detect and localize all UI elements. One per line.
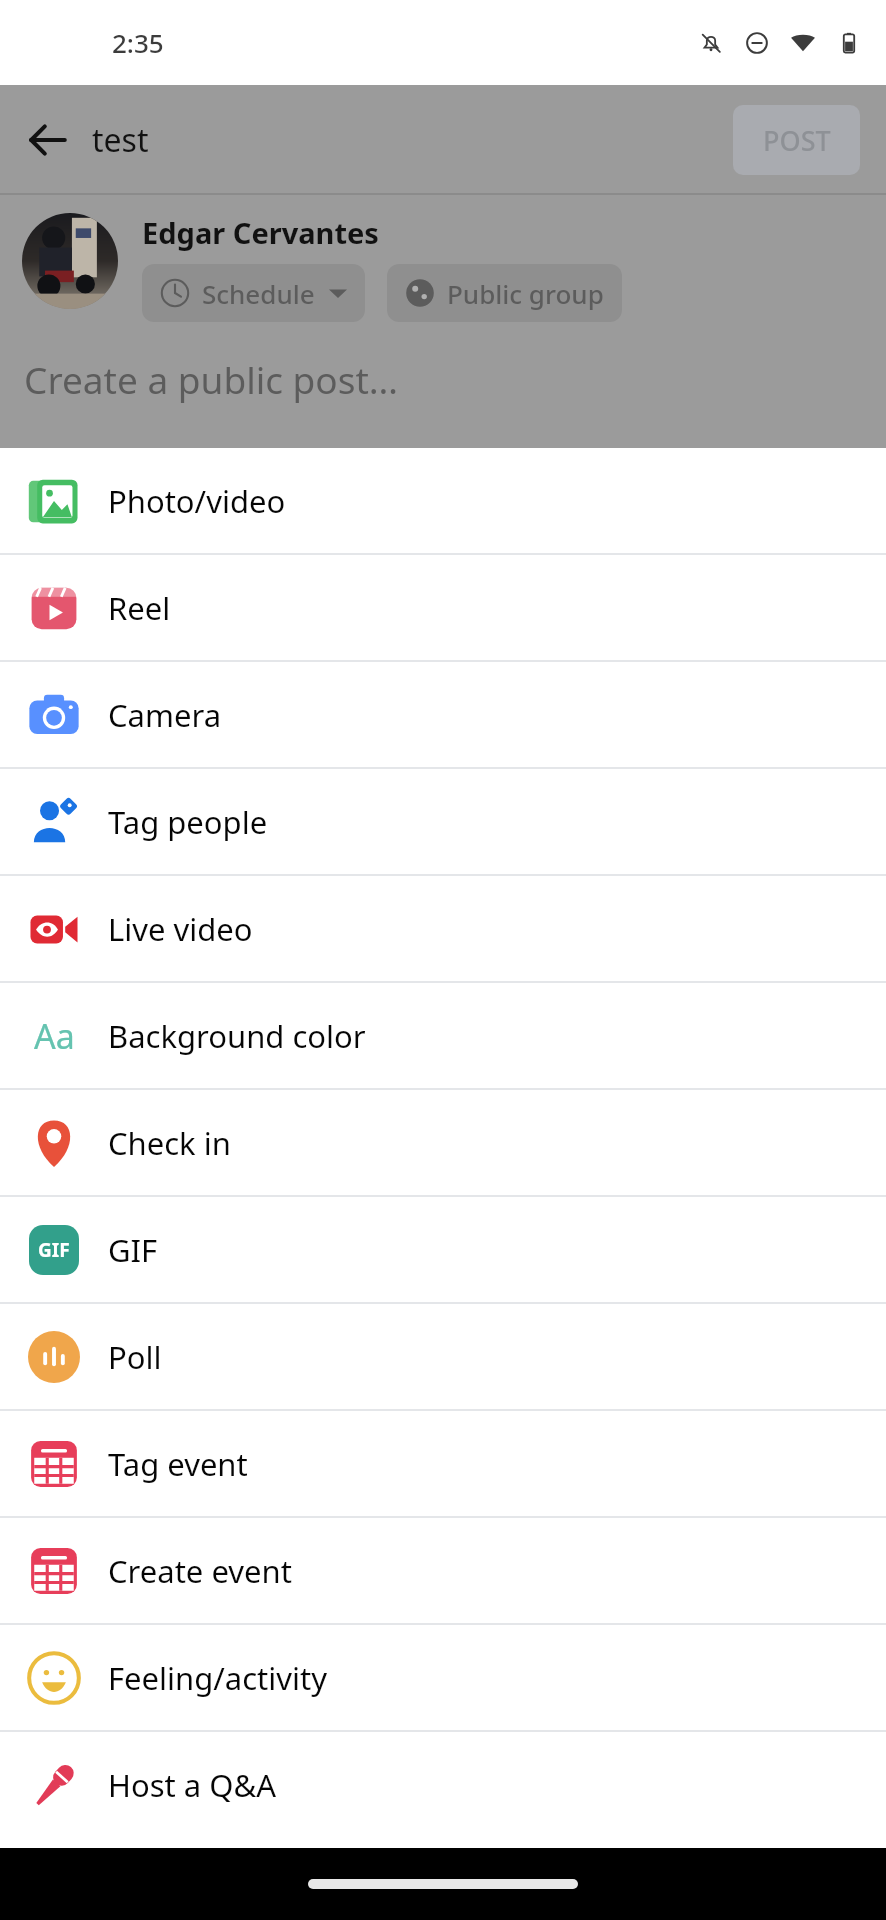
button[interactable]: Live video xyxy=(0,876,886,981)
staticText: Reel xyxy=(108,587,171,629)
button[interactable]: Aa xyxy=(0,983,886,1088)
staticText: Tag event xyxy=(108,1443,248,1485)
staticText: Create event xyxy=(108,1550,292,1592)
staticText: Camera xyxy=(108,694,222,736)
button[interactable]: Back xyxy=(12,104,84,176)
staticText: test xyxy=(92,118,149,162)
staticText: Create a public post… xyxy=(24,354,399,404)
button[interactable]: GIF xyxy=(0,1197,886,1302)
staticText: Aa xyxy=(34,1013,75,1059)
button[interactable]: Public group xyxy=(405,264,604,322)
button[interactable]: Schedule xyxy=(160,264,347,322)
staticText: GIF xyxy=(38,1237,70,1263)
staticText: Feeling/activity xyxy=(108,1657,328,1699)
staticText: Poll xyxy=(108,1336,162,1378)
staticText: Edgar Cervantes xyxy=(142,213,379,252)
staticText: GIF xyxy=(108,1229,158,1271)
button[interactable]: Create event xyxy=(0,1518,886,1623)
button[interactable]: Tag event xyxy=(0,1411,886,1516)
staticText: Photo/video xyxy=(108,480,286,522)
button[interactable]: POST xyxy=(733,105,860,175)
staticText: POST xyxy=(763,122,831,159)
button[interactable]: Reel xyxy=(0,555,886,660)
staticText: 2:35 xyxy=(112,25,164,60)
button[interactable]: Check in xyxy=(0,1090,886,1195)
staticText: Live video xyxy=(108,908,253,950)
button[interactable]: Host a Q&A xyxy=(0,1732,886,1837)
staticText: Check in xyxy=(108,1122,231,1164)
button[interactable]: Tag people xyxy=(0,769,886,874)
button[interactable]: Poll xyxy=(0,1304,886,1409)
staticText: Public group xyxy=(447,276,604,311)
staticText: Background color xyxy=(108,1015,366,1057)
staticText: Schedule xyxy=(202,276,315,311)
staticText: Host a Q&A xyxy=(108,1764,276,1806)
staticText: Tag people xyxy=(108,801,268,843)
button[interactable]: Feeling/activity xyxy=(0,1625,886,1730)
button[interactable]: Photo/video xyxy=(0,448,886,553)
button[interactable]: Camera xyxy=(0,662,886,767)
